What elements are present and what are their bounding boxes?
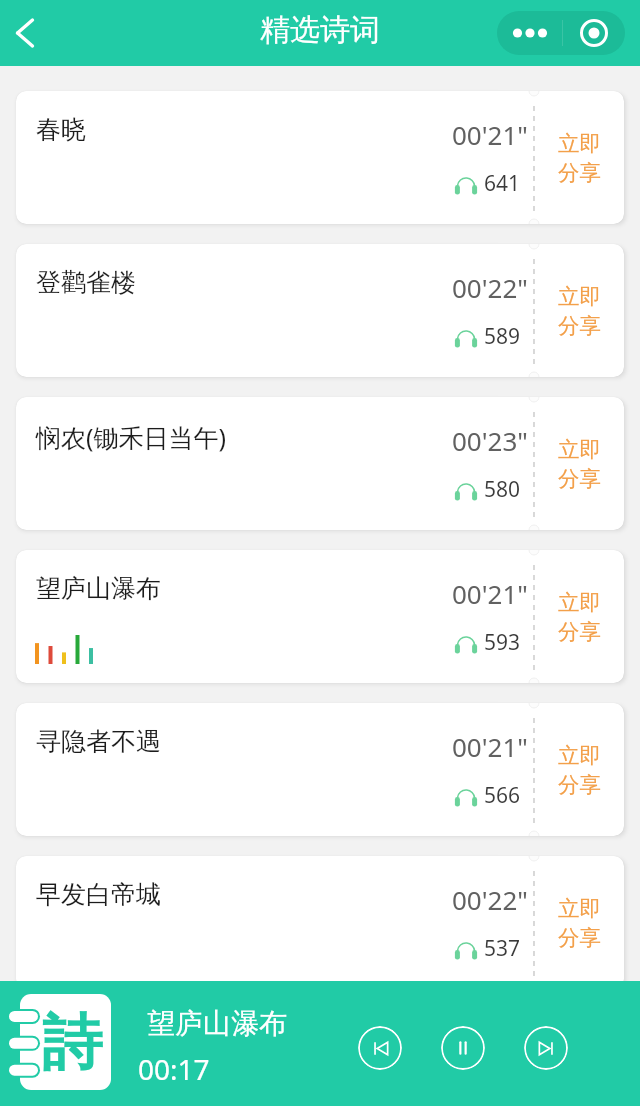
staticText: 641 xyxy=(484,169,521,198)
staticText: 00:17 xyxy=(138,1050,210,1088)
button[interactable]: Pause xyxy=(441,1026,485,1070)
staticText: 分享 xyxy=(558,771,601,798)
button[interactable]: 立即 xyxy=(535,703,624,836)
button[interactable]: 寻隐者不遇 xyxy=(16,703,624,836)
staticText: 分享 xyxy=(558,159,601,186)
staticText: 登鹳雀楼 xyxy=(36,267,136,298)
button[interactable]: 立即 xyxy=(535,397,624,530)
staticText: 分享 xyxy=(558,312,601,339)
staticText: 00'21" xyxy=(452,729,528,764)
staticText: 00'21" xyxy=(452,117,528,152)
staticText: 春晓 xyxy=(36,114,86,145)
button[interactable]: 登鹳雀楼 xyxy=(16,244,624,377)
button[interactable]: 悯农(锄禾日当午) xyxy=(16,397,624,530)
staticText: 566 xyxy=(484,781,521,810)
staticText: 分享 xyxy=(558,924,601,951)
staticText: 00'22" xyxy=(452,270,528,305)
staticText: 立即 xyxy=(558,130,601,157)
staticText: 分享 xyxy=(558,618,601,645)
staticText: 00'21" xyxy=(452,576,528,611)
staticText: 立即 xyxy=(558,283,601,310)
staticText: 立即 xyxy=(558,436,601,463)
staticText: 立即 xyxy=(558,895,601,922)
button[interactable]: Close xyxy=(563,11,625,55)
staticText: 望庐山瀑布 xyxy=(147,1006,287,1041)
staticText: 望庐山瀑布 xyxy=(36,573,161,604)
button[interactable]: 望庐山瀑布 xyxy=(16,550,624,683)
button[interactable]: 立即 xyxy=(535,550,624,683)
staticText: 寻隐者不遇 xyxy=(36,726,161,757)
staticText: 詩 xyxy=(42,1005,102,1081)
button[interactable]: 立即 xyxy=(535,244,624,377)
staticText: 00'22" xyxy=(452,882,528,917)
staticText: 分享 xyxy=(558,465,601,492)
staticText: 589 xyxy=(484,322,521,351)
button[interactable]: 立即 xyxy=(535,856,624,989)
staticText: 悯农(锄禾日当午) xyxy=(36,420,227,454)
button[interactable]: 早发白帝城 xyxy=(16,856,624,989)
staticText: 精选诗词 xyxy=(260,11,380,49)
button[interactable]: Now playing artwork xyxy=(7,994,111,1090)
button[interactable]: Previous xyxy=(358,1026,402,1070)
button[interactable]: Next xyxy=(524,1026,568,1070)
staticText: 立即 xyxy=(558,742,601,769)
staticText: 537 xyxy=(484,934,521,963)
staticText: 早发白帝城 xyxy=(36,879,161,910)
button[interactable]: 立即 xyxy=(535,91,624,224)
staticText: 立即 xyxy=(558,589,601,616)
button[interactable]: 春晓 xyxy=(16,91,624,224)
staticText: 580 xyxy=(484,475,521,504)
staticText: 593 xyxy=(484,628,521,657)
button[interactable]: Back xyxy=(0,8,50,58)
staticText: 00'23" xyxy=(452,423,528,458)
button[interactable]: More options xyxy=(497,11,562,55)
